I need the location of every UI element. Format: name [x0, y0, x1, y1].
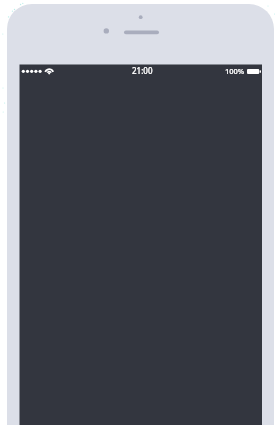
- staticText: 100%: [225, 66, 245, 76]
- button[interactable]: 21:00: [132, 65, 153, 76]
- button[interactable]: Cellular signal and Wi-Fi: [20, 63, 58, 79]
- button[interactable]: App screen: [20, 65, 263, 425]
- button[interactable]: Battery 100 percent: [225, 66, 261, 76]
